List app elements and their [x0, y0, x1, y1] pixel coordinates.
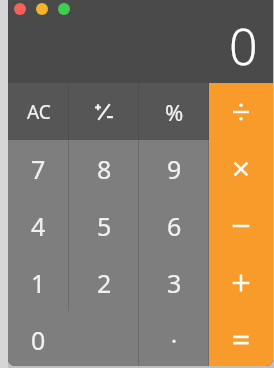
- other: Equals: [229, 328, 253, 352]
- button[interactable]: 1: [8, 254, 69, 311]
- staticText: 0: [31, 323, 46, 357]
- other: Plus: [229, 271, 253, 295]
- staticText: 7: [31, 152, 46, 186]
- button[interactable]: 8: [69, 140, 139, 197]
- button[interactable]: Multiply: [209, 140, 273, 197]
- staticText: 4: [31, 209, 46, 243]
- button[interactable]: Plus: [209, 254, 273, 311]
- staticText: 5: [97, 209, 112, 243]
- button[interactable]: Divide: [209, 83, 273, 140]
- other: Decimal point: [169, 335, 179, 345]
- staticText: 1: [31, 266, 46, 300]
- button[interactable]: Decimal point: [139, 311, 209, 366]
- other: Divide: [229, 100, 253, 124]
- button[interactable]: Minimize: [36, 3, 48, 15]
- button[interactable]: Plus minus: [69, 83, 139, 140]
- button[interactable]: %: [139, 83, 209, 140]
- button[interactable]: 7: [8, 140, 69, 197]
- other: Plus minus: [91, 99, 117, 125]
- staticText: 2: [97, 266, 112, 300]
- other: Minus: [229, 214, 253, 238]
- button[interactable]: 0: [8, 311, 139, 366]
- staticText: 6: [167, 209, 182, 243]
- button[interactable]: 4: [8, 197, 69, 254]
- staticText: 0: [229, 12, 258, 80]
- button[interactable]: 9: [139, 140, 209, 197]
- other: Multiply: [231, 159, 251, 179]
- button[interactable]: Equals: [209, 311, 273, 366]
- button[interactable]: Minus: [209, 197, 273, 254]
- button[interactable]: Maximize: [58, 3, 70, 15]
- staticText: 8: [97, 152, 112, 186]
- button[interactable]: 3: [139, 254, 209, 311]
- button[interactable]: 6: [139, 197, 209, 254]
- button[interactable]: Close: [14, 3, 26, 15]
- staticText: AC: [27, 99, 51, 125]
- staticText: %: [165, 97, 184, 127]
- button[interactable]: 2: [69, 254, 139, 311]
- button[interactable]: 5: [69, 197, 139, 254]
- staticText: 9: [167, 152, 182, 186]
- staticText: 3: [167, 266, 182, 300]
- button[interactable]: AC: [8, 83, 69, 140]
